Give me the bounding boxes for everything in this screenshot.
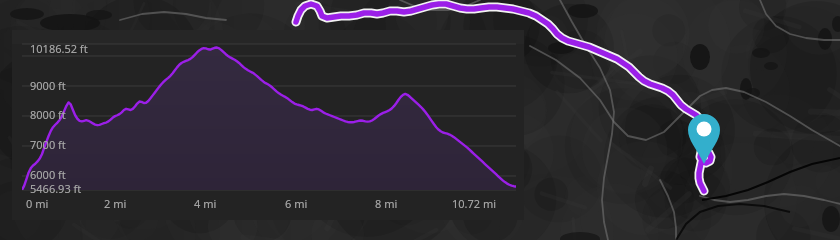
button[interactable]: Elevation profile chart: [0, 0, 840, 240]
button[interactable]: Route map: [0, 0, 840, 240]
